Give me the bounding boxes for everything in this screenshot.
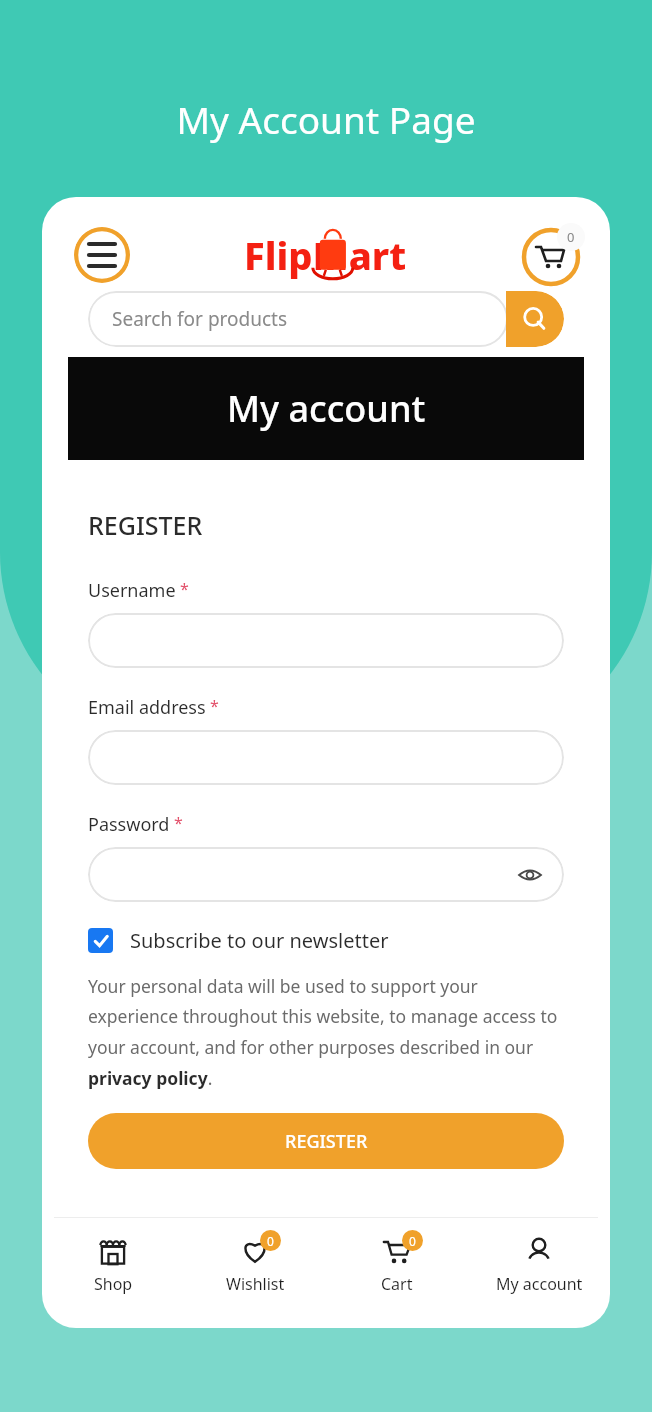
button[interactable] bbox=[88, 613, 564, 668]
staticText: 0 bbox=[567, 228, 575, 246]
staticText: Email address bbox=[88, 695, 206, 720]
button[interactable]: Cart bbox=[522, 224, 584, 286]
staticText: * bbox=[180, 578, 189, 600]
staticText: REGISTER bbox=[285, 1129, 368, 1154]
button[interactable]: REGISTER bbox=[88, 1113, 564, 1169]
button[interactable]: Subscribe to our newsletter bbox=[88, 927, 389, 954]
button[interactable]: Show password bbox=[518, 863, 542, 887]
staticText: Shop bbox=[94, 1273, 133, 1295]
button[interactable]: Shop bbox=[42, 1218, 184, 1310]
button[interactable]: 0 bbox=[184, 1218, 326, 1310]
staticText: My account bbox=[227, 384, 426, 433]
button[interactable]: My account bbox=[468, 1218, 610, 1310]
staticText: * bbox=[174, 812, 183, 834]
button[interactable]: 0 bbox=[326, 1218, 468, 1310]
button[interactable] bbox=[88, 730, 564, 785]
staticText: Subscribe to our newsletter bbox=[130, 927, 389, 954]
button[interactable]: Search for products bbox=[88, 291, 564, 347]
staticText: Search for products bbox=[112, 306, 288, 332]
staticText: Cart bbox=[381, 1273, 413, 1295]
staticText: FlipMart bbox=[244, 229, 407, 281]
button[interactable]: Show password bbox=[88, 847, 564, 902]
staticText: Wishlist bbox=[226, 1273, 285, 1295]
staticText: My account bbox=[496, 1273, 583, 1295]
staticText: * bbox=[210, 695, 219, 717]
staticText: 0 bbox=[267, 1233, 274, 1249]
staticText: 0 bbox=[409, 1233, 416, 1249]
staticText: My Account Page bbox=[176, 94, 476, 144]
button[interactable]: Menu bbox=[74, 227, 130, 283]
staticText: Password bbox=[88, 812, 170, 837]
staticText: Your personal data will be used to suppo… bbox=[88, 974, 564, 1090]
staticText: REGISTER bbox=[88, 508, 203, 542]
button[interactable]: Search bbox=[506, 291, 564, 347]
staticText: Username bbox=[88, 578, 176, 603]
